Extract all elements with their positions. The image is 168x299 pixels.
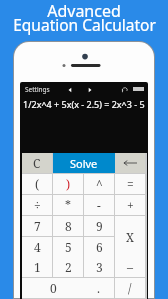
button[interactable]: ÷	[22, 195, 52, 215]
button[interactable]: 4	[22, 237, 52, 257]
staticText: ÷	[34, 197, 41, 213]
staticText: 1	[34, 259, 41, 275]
staticText: C	[33, 155, 41, 171]
button[interactable]: C	[22, 153, 52, 173]
button[interactable]: )	[53, 174, 83, 194]
staticText: )	[66, 176, 71, 192]
staticText: 9	[96, 218, 103, 234]
button[interactable]: 2	[53, 257, 83, 277]
button[interactable]: *	[53, 195, 83, 215]
staticText: +	[127, 197, 134, 213]
button[interactable]: +	[115, 195, 145, 215]
button[interactable]: ^	[84, 174, 114, 194]
button[interactable]: Backspace	[115, 153, 145, 173]
button[interactable]: 8	[53, 216, 83, 236]
staticText: 2	[65, 259, 72, 275]
button[interactable]: /	[115, 278, 145, 298]
staticText: .	[97, 280, 101, 296]
staticText: ^	[96, 176, 103, 192]
button[interactable]: 6	[84, 237, 114, 257]
button[interactable]: Previous	[64, 84, 75, 95]
staticText: X	[126, 229, 134, 245]
staticText: Advanced	[47, 0, 121, 22]
button[interactable]: .	[84, 278, 114, 298]
staticText: 1/2x^4 + 5x(x - 2.5) = 2x^3 - 5	[23, 98, 145, 110]
staticText: -	[97, 197, 101, 213]
button[interactable]: 0	[22, 278, 84, 298]
staticText: *	[65, 197, 72, 213]
staticText: Solve	[70, 156, 98, 171]
staticText: 8	[65, 218, 72, 234]
button[interactable]: 5	[53, 237, 83, 257]
button[interactable]: Next	[84, 84, 95, 95]
button[interactable]: 7	[22, 216, 52, 236]
staticText: Settings	[25, 85, 50, 94]
button[interactable]: Undo	[119, 84, 130, 95]
staticText: –	[127, 259, 134, 275]
staticText: 0	[50, 280, 57, 296]
staticText: /	[128, 280, 132, 296]
staticText: 4	[34, 239, 41, 255]
staticText: 6	[96, 239, 103, 255]
staticText: 3	[96, 259, 103, 275]
button[interactable]: =	[115, 174, 145, 194]
button[interactable]: 1	[22, 257, 52, 277]
button[interactable]: 9	[84, 216, 114, 236]
button[interactable]: 3	[84, 257, 114, 277]
staticText: =	[127, 176, 134, 192]
button[interactable]: Settings	[23, 84, 52, 95]
button[interactable]: Solve	[53, 153, 115, 173]
staticText: (	[35, 176, 40, 192]
button[interactable]: X	[115, 216, 145, 257]
button[interactable]: (	[22, 174, 52, 194]
button[interactable]: –	[115, 257, 145, 277]
staticText: Equation Calculator	[13, 14, 156, 35]
staticText: 7	[34, 218, 41, 234]
staticText: 5	[65, 239, 72, 255]
button[interactable]: -	[84, 195, 114, 215]
